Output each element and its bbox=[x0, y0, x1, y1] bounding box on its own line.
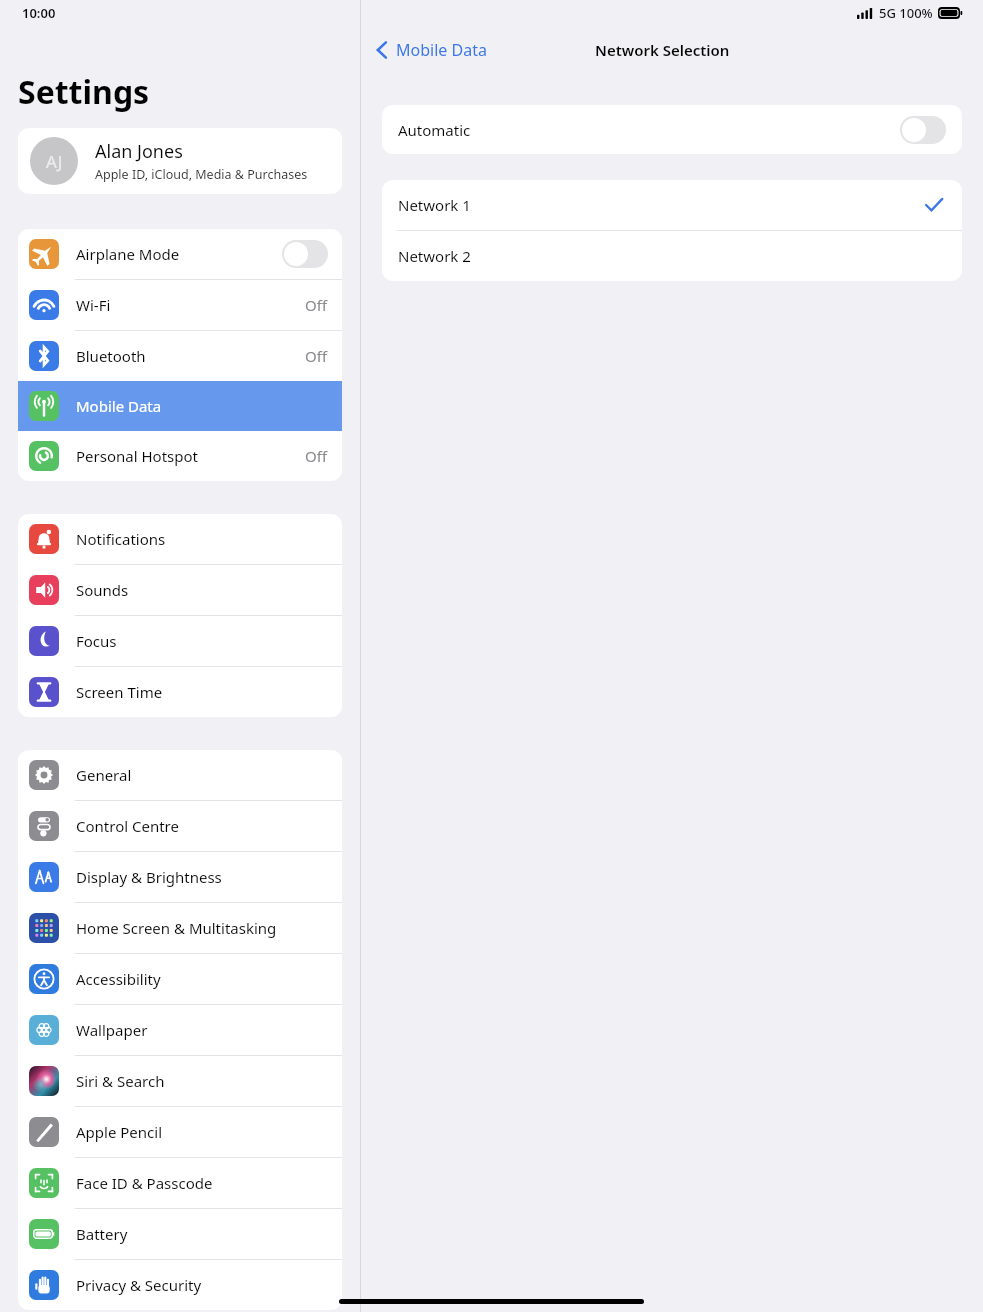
staticText: 10:00 bbox=[22, 4, 56, 22]
staticText: Network Selection bbox=[595, 40, 730, 60]
staticText: Privacy & Security bbox=[76, 1275, 328, 1295]
staticText: Apple Pencil bbox=[76, 1122, 328, 1142]
button[interactable]: Privacy & Security bbox=[18, 1260, 342, 1310]
button[interactable]: Mobile Data bbox=[375, 39, 487, 61]
staticText: Accessibility bbox=[76, 969, 328, 989]
button[interactable]: Screen Time bbox=[18, 667, 342, 717]
staticText: Face ID & Passcode bbox=[76, 1173, 328, 1193]
button[interactable]: Automatic bbox=[382, 105, 962, 154]
button[interactable]: Bluetooth bbox=[18, 331, 342, 381]
staticText: Siri & Search bbox=[76, 1071, 328, 1091]
staticText: 5G 100% bbox=[879, 4, 933, 22]
button[interactable]: Accessibility bbox=[18, 954, 342, 1004]
staticText: Wallpaper bbox=[76, 1020, 328, 1040]
staticText: Battery bbox=[76, 1224, 328, 1244]
staticText: Alan Jones bbox=[95, 139, 183, 164]
staticText: Screen Time bbox=[76, 682, 328, 702]
staticText: Bluetooth bbox=[76, 346, 305, 366]
staticText: General bbox=[76, 765, 328, 785]
button[interactable]: Home Screen & Multitasking bbox=[18, 903, 342, 953]
staticText: Wi-Fi bbox=[76, 295, 305, 315]
button[interactable]: AJ bbox=[18, 128, 342, 194]
staticText: Mobile Data bbox=[396, 39, 487, 61]
staticText: Settings bbox=[18, 70, 150, 114]
staticText: Control Centre bbox=[76, 816, 328, 836]
staticText: Mobile Data bbox=[76, 396, 328, 416]
button[interactable]: Personal Hotspot bbox=[18, 431, 342, 481]
staticText: Automatic bbox=[398, 120, 471, 140]
button[interactable]: Wallpaper bbox=[18, 1005, 342, 1055]
button[interactable]: General bbox=[18, 750, 342, 800]
button[interactable]: Siri & Search bbox=[18, 1056, 342, 1106]
staticText: Sounds bbox=[76, 580, 328, 600]
button[interactable]: Notifications bbox=[18, 514, 342, 564]
button[interactable]: Toggle bbox=[282, 240, 328, 268]
staticText: Display & Brightness bbox=[76, 867, 328, 887]
button[interactable]: Battery bbox=[18, 1209, 342, 1259]
button[interactable]: Sounds bbox=[18, 565, 342, 615]
button[interactable]: Display & Brightness bbox=[18, 852, 342, 902]
staticText: Network 1 bbox=[398, 195, 471, 215]
staticText: Network 2 bbox=[398, 246, 471, 266]
button[interactable]: Network 2 bbox=[382, 231, 962, 281]
staticText: AJ bbox=[46, 150, 63, 173]
button[interactable]: Airplane Mode bbox=[18, 229, 342, 279]
staticText: Focus bbox=[76, 631, 328, 651]
staticText: Home Screen & Multitasking bbox=[76, 918, 328, 938]
staticText: Off bbox=[305, 346, 328, 366]
staticText: Apple ID, iCloud, Media & Purchases bbox=[95, 166, 308, 183]
button[interactable]: Toggle bbox=[900, 116, 946, 144]
button[interactable]: Face ID & Passcode bbox=[18, 1158, 342, 1208]
staticText: Off bbox=[305, 295, 328, 315]
button[interactable]: Wi-Fi bbox=[18, 280, 342, 330]
button[interactable]: Network 1 bbox=[382, 180, 962, 230]
button[interactable]: Focus bbox=[18, 616, 342, 666]
staticText: Off bbox=[305, 446, 328, 466]
staticText: Airplane Mode bbox=[76, 244, 282, 264]
button[interactable]: Apple Pencil bbox=[18, 1107, 342, 1157]
staticText: Notifications bbox=[76, 529, 328, 549]
button[interactable]: Control Centre bbox=[18, 801, 342, 851]
staticText: Personal Hotspot bbox=[76, 446, 305, 466]
button[interactable]: Mobile Data bbox=[18, 381, 342, 431]
